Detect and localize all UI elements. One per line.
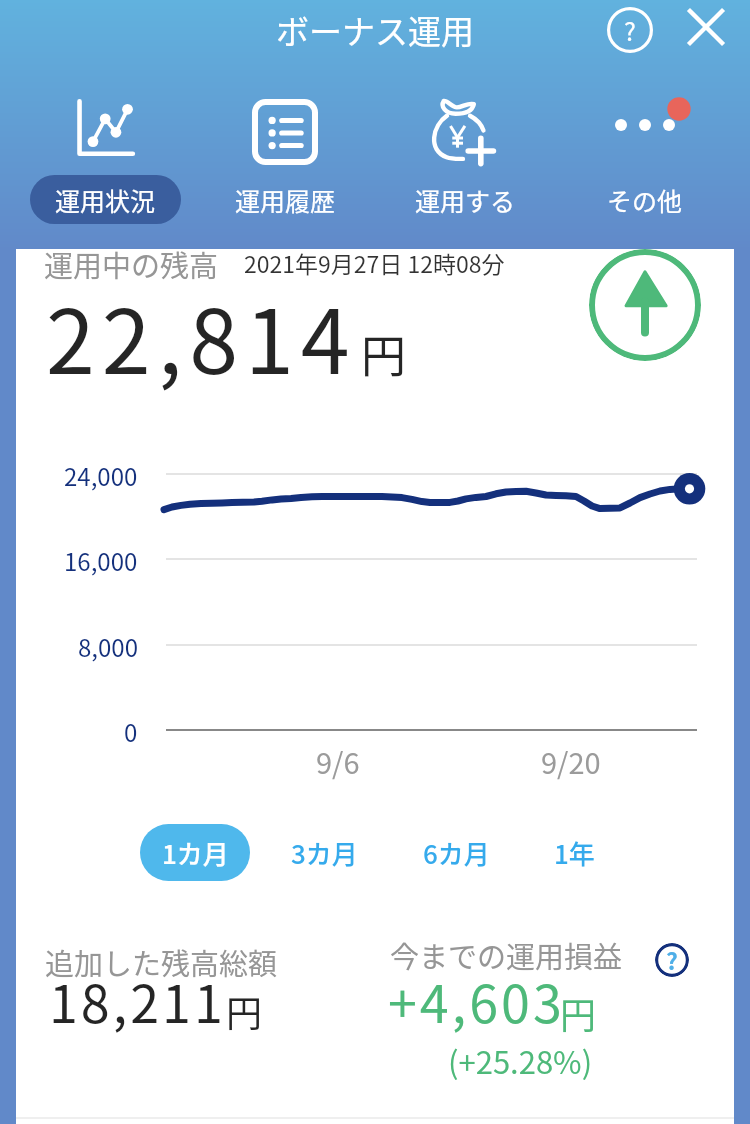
staticText: 6カ月 [423, 834, 490, 872]
staticText: ? [666, 943, 678, 976]
staticText: 追加した残高総額 [45, 941, 278, 983]
staticText: 円 [361, 321, 407, 386]
button[interactable]: 3カ月 [274, 824, 374, 881]
button[interactable]: Help [598, 0, 662, 62]
staticText: 18,211 [49, 963, 226, 1038]
button[interactable]: Help about profit [655, 943, 689, 977]
staticText: ? [624, 12, 636, 48]
button[interactable]: 1カ月 [140, 824, 250, 881]
staticText: 2021年9月27日 12時08分 [244, 246, 505, 279]
staticText: 3カ月 [291, 834, 358, 872]
staticText: 0 [124, 714, 138, 749]
staticText: 運用中の残高 [44, 243, 219, 285]
button[interactable]: その他 [555, 95, 735, 218]
staticText: 22,814 [46, 272, 357, 399]
staticText: 9/6 [316, 740, 360, 782]
button[interactable]: Close [674, 0, 738, 59]
staticText: 円 [226, 985, 263, 1037]
button[interactable]: 6カ月 [406, 824, 506, 881]
staticText: 運用履歴 [235, 182, 336, 218]
staticText: 円 [560, 987, 597, 1039]
staticText: 今までの運用損益 [390, 934, 623, 976]
staticText: 1年 [554, 834, 595, 872]
staticText: 運用する [415, 182, 516, 218]
staticText: +4,603 [388, 963, 565, 1038]
button[interactable]: Increase [589, 249, 701, 361]
staticText: 1カ月 [162, 834, 229, 872]
staticText: (+25.28%) [448, 1038, 593, 1083]
button[interactable]: 運用する [375, 95, 555, 218]
staticText: ボーナス運用 [276, 6, 474, 54]
staticText: 運用状況 [55, 182, 156, 218]
staticText: 9/20 [541, 740, 601, 782]
staticText: 16,000 [64, 543, 138, 578]
button[interactable]: 1年 [524, 824, 624, 881]
staticText: その他 [607, 182, 683, 218]
staticText: 8,000 [78, 629, 138, 664]
button[interactable]: 運用履歴 [195, 95, 375, 218]
button[interactable]: 運用状況 [16, 95, 195, 218]
staticText: 24,000 [64, 458, 138, 493]
